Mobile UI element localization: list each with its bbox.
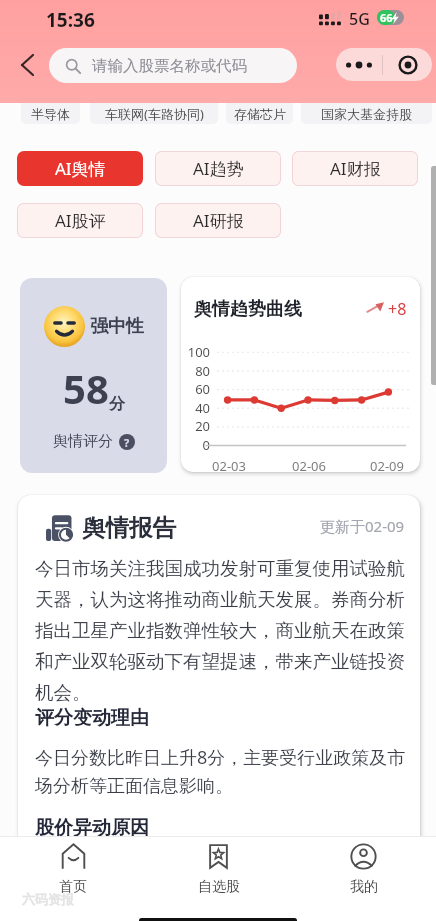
staticText: 58 (63, 361, 109, 415)
staticText: 02-09 (365, 457, 409, 472)
staticText: 国家大基金持股 (321, 106, 412, 122)
staticText: 请输入股票名称或代码 (92, 56, 247, 76)
button[interactable]: 自选股 (146, 837, 291, 897)
button[interactable]: 我的 (291, 837, 436, 897)
button[interactable]: 存储芯片 (226, 103, 293, 124)
staticText: +8 (388, 298, 407, 320)
staticText: ? (124, 435, 130, 450)
button[interactable]: Back (10, 48, 44, 82)
staticText: 5G (349, 8, 370, 30)
staticText: 评分变动理由 (35, 706, 149, 730)
staticText: 今日市场关注我国成功发射可重复使用试验航天器，认为这将推动商业航天发展。券商分析… (35, 557, 409, 705)
button[interactable]: 首页 (0, 837, 146, 897)
staticText: 66 (380, 10, 393, 25)
staticText: 自选股 (198, 878, 240, 896)
staticText: AI股评 (55, 209, 106, 232)
staticText: 分 (109, 394, 125, 414)
button[interactable]: Help (119, 434, 135, 450)
button[interactable]: AI研报 (155, 203, 281, 238)
staticText: 舆情评分 (53, 432, 113, 451)
staticText: AI舆情 (55, 157, 106, 180)
button[interactable]: 请输入股票名称或代码 (49, 48, 297, 83)
staticText: 100 (181, 343, 210, 361)
staticText: AI趋势 (193, 157, 244, 180)
staticText: 股价异动原因 (35, 816, 149, 840)
staticText: 40 (181, 399, 210, 417)
staticText: 02-06 (287, 457, 331, 472)
button[interactable]: 舆情趋势曲线 (181, 277, 420, 472)
button[interactable]: More options (336, 48, 382, 81)
button[interactable]: 车联网(车路协同) (90, 103, 218, 124)
staticText: AI财报 (330, 157, 381, 180)
button[interactable]: Close mini program (383, 48, 432, 81)
staticText: 02-03 (207, 457, 251, 472)
staticText: 半导体 (31, 106, 70, 122)
staticText: 我的 (350, 878, 378, 896)
button[interactable]: 国家大基金持股 (301, 103, 432, 124)
staticText: 六码资报 (22, 891, 74, 907)
staticText: 20 (181, 417, 210, 435)
staticText: 80 (181, 362, 210, 380)
staticText: 更新于02-09 (320, 516, 405, 536)
button[interactable]: AI趋势 (155, 151, 281, 186)
button[interactable]: AI财报 (292, 151, 418, 186)
staticText: 今日分数比昨日上升8分，主要受行业政策及市场分析等正面信息影响。 (35, 745, 409, 798)
staticText: 舆情趋势曲线 (194, 298, 302, 321)
button[interactable]: 半导体 (21, 103, 80, 124)
button[interactable]: AI舆情 (17, 151, 143, 186)
button[interactable]: AI股评 (17, 203, 143, 238)
staticText: 存储芯片 (234, 106, 286, 122)
staticText: 舆情报告 (82, 513, 176, 543)
staticText: 首页 (59, 878, 87, 896)
button[interactable]: 强中性 (20, 278, 167, 473)
staticText: 0 (181, 436, 210, 454)
staticText: AI研报 (193, 209, 244, 232)
staticText: 强中性 (90, 315, 144, 338)
staticText: 车联网(车路协同) (105, 105, 204, 123)
staticText: 60 (181, 380, 210, 398)
staticText: 15:36 (46, 7, 95, 33)
